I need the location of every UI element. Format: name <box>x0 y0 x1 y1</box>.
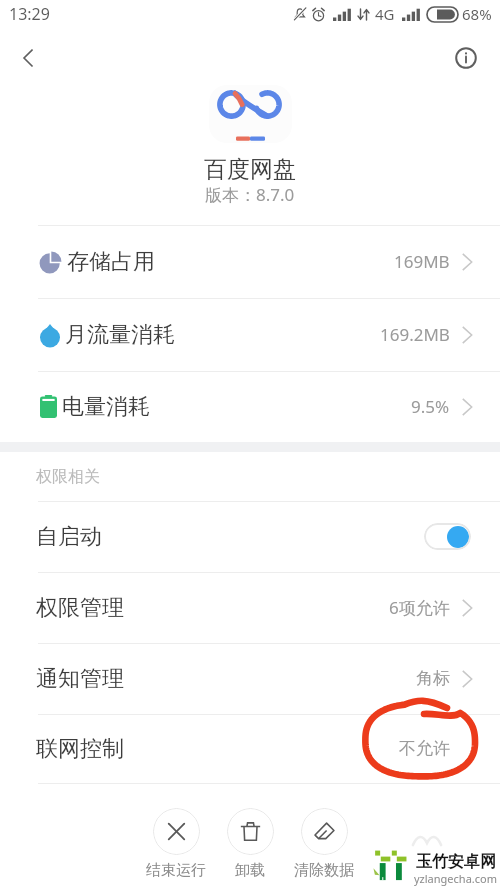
staticText: 权限管理 <box>36 594 124 622</box>
staticText: 自启动 <box>36 523 102 551</box>
button[interactable]: 结束运行 <box>139 808 213 880</box>
button[interactable]: 权限管理 <box>0 572 500 643</box>
staticText: 6项允许 <box>389 596 450 619</box>
button[interactable]: 卸载 <box>213 808 287 880</box>
staticText: 通知管理 <box>36 665 124 693</box>
button[interactable]: Back <box>6 36 50 80</box>
staticText: yzlangecha.com <box>414 871 497 886</box>
staticText: 角标 <box>416 668 450 689</box>
staticText: 169.2MB <box>380 323 450 346</box>
staticText: 结束运行 <box>139 861 213 880</box>
staticText: 68% <box>462 4 492 24</box>
staticText: 卸载 <box>213 861 287 880</box>
button[interactable]: 联网控制 <box>0 714 500 783</box>
button[interactable]: App info <box>446 38 486 78</box>
button[interactable]: 电量消耗 <box>0 371 500 442</box>
staticText: 联网控制 <box>36 735 124 763</box>
staticText: 电量消耗 <box>62 393 150 421</box>
button[interactable]: 清除数据 <box>287 808 361 880</box>
staticText: 权限相关 <box>36 467 100 487</box>
staticText: 9.5% <box>411 395 450 418</box>
staticText: 不允许 <box>399 738 450 759</box>
staticText: 版本：8.7.0 <box>205 183 295 206</box>
button[interactable]: 自启动 <box>0 501 500 572</box>
staticText: 存储占用 <box>67 248 155 276</box>
button[interactable]: 月流量消耗 <box>0 298 500 371</box>
staticText: 月流量消耗 <box>65 321 175 349</box>
staticText: 169MB <box>394 250 450 273</box>
staticText: 13:29 <box>9 3 50 25</box>
staticText: 玉竹安卓网 <box>416 852 496 872</box>
button[interactable]: 存储占用 <box>0 225 500 298</box>
staticText: 清除数据 <box>287 861 361 880</box>
staticText: 4G <box>375 4 395 24</box>
staticText: 百度网盘 <box>204 155 296 184</box>
button[interactable]: 通知管理 <box>0 643 500 714</box>
